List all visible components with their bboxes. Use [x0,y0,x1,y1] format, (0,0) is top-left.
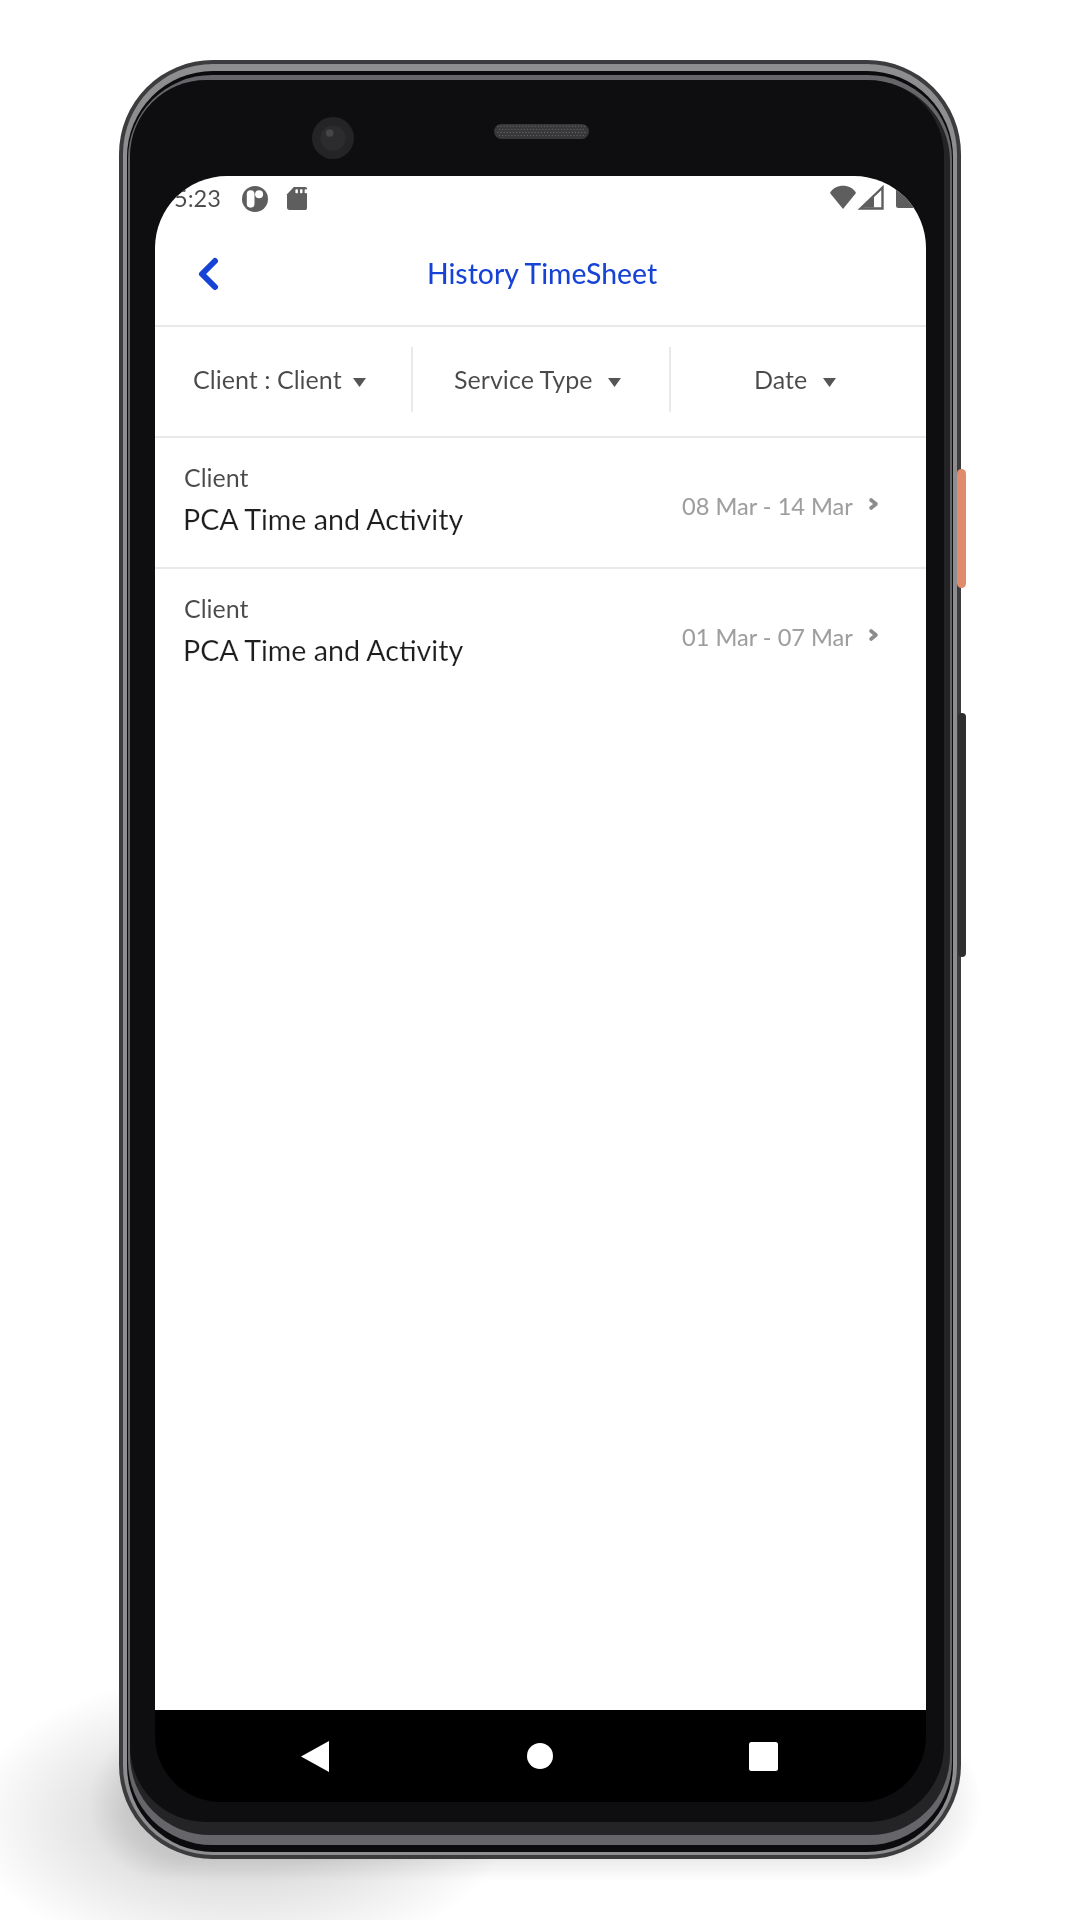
button[interactable]: Date [732,327,858,436]
staticText: History TimeSheet [427,256,658,290]
button[interactable]: Back [172,235,245,312]
button[interactable]: Client [155,438,926,567]
staticText: 08 Mar - 14 Mar [682,492,853,520]
button[interactable]: Client : Client [171,327,388,436]
staticText: Date [754,364,808,394]
button[interactable]: Recents [724,1717,802,1795]
staticText: PCA Time and Activity [183,633,464,667]
staticText: Client : Client [193,364,342,394]
button[interactable]: Home [501,1717,579,1795]
staticText: 01 Mar - 07 Mar [682,623,853,651]
staticText: Service Type [454,364,593,394]
button[interactable]: Service Type [432,327,643,436]
staticText: Client [184,593,249,623]
staticText: 5:23 [174,184,221,212]
button[interactable]: Client [155,569,926,698]
button[interactable]: Back [276,1717,354,1795]
staticText: Client [184,462,249,492]
staticText: PCA Time and Activity [183,502,464,536]
